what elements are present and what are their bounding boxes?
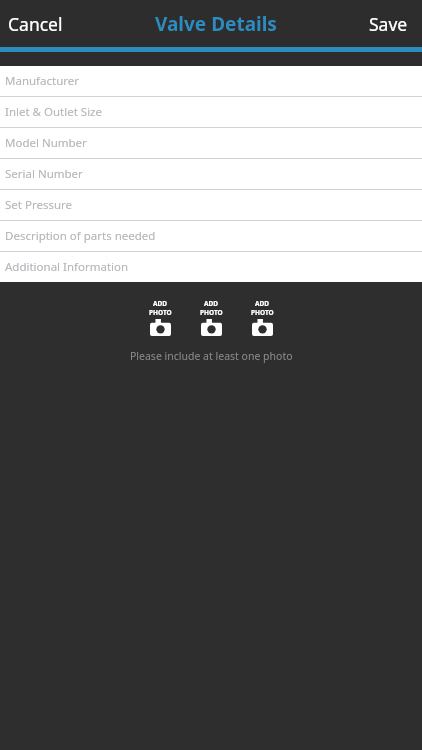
staticText: Please include at least one photo (130, 349, 293, 363)
staticText: Save (369, 12, 408, 36)
staticText: Valve Details (155, 11, 277, 37)
staticText: PHOTO (251, 308, 274, 317)
button[interactable]: Add photo (198, 298, 225, 337)
button[interactable]: Set Pressure (0, 190, 422, 221)
button[interactable]: Model Number (0, 128, 422, 159)
staticText: Additional Information (5, 259, 129, 275)
staticText: Serial Number (5, 166, 83, 182)
staticText: ADD (153, 299, 168, 308)
button[interactable]: Add photo (147, 298, 174, 337)
staticText: ADD (255, 299, 270, 308)
staticText: Description of parts needed (5, 228, 156, 244)
button[interactable]: Description of parts needed (0, 221, 422, 252)
button[interactable]: Additional Information (0, 252, 422, 282)
button[interactable]: Save (361, 6, 422, 42)
staticText: Cancel (8, 12, 63, 36)
button[interactable]: Manufacturer (0, 66, 422, 97)
staticText: Set Pressure (5, 197, 73, 213)
button[interactable]: Serial Number (0, 159, 422, 190)
staticText: Manufacturer (5, 73, 80, 89)
staticText: Inlet & Outlet Size (5, 104, 103, 120)
staticText: ADD (204, 299, 219, 308)
staticText: PHOTO (200, 308, 223, 317)
staticText: Model Number (5, 135, 87, 151)
button[interactable]: Inlet & Outlet Size (0, 97, 422, 128)
staticText: PHOTO (149, 308, 172, 317)
button[interactable]: Add photo (249, 298, 276, 337)
button[interactable]: Cancel (0, 6, 71, 42)
